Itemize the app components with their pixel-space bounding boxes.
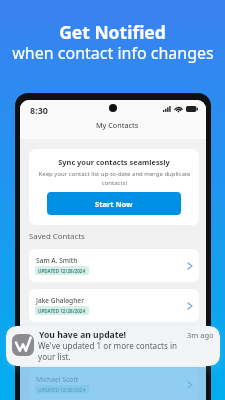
button[interactable]: You have an update! [6, 326, 220, 366]
staticText: Sync your contacts seamlessly [58, 157, 170, 167]
staticText: We've updated 1 or more contacts in your… [38, 340, 178, 362]
staticText: My Contacts [96, 120, 139, 130]
staticText: Jake Ghalagher [36, 296, 84, 305]
staticText: Saved Contacts [29, 231, 85, 242]
staticText: You have an update! [39, 329, 126, 341]
button[interactable]: Michael Scott [29, 368, 199, 400]
other: Open contact [188, 303, 192, 309]
button[interactable]: Anna Pearce [29, 328, 199, 361]
staticText: Start Now [95, 199, 133, 209]
staticText: Michael Scott [36, 375, 79, 384]
staticText: Get Notified [59, 20, 166, 44]
button[interactable]: Sam A. Smith [29, 249, 199, 282]
staticText: Anna Pearce [36, 335, 76, 344]
other: Open contact [188, 263, 192, 269]
staticText: Sam A. Smith [36, 256, 78, 265]
staticText: when contact info changes [12, 42, 214, 64]
staticText: UPDATED 12/28/2024 [38, 347, 86, 353]
other: Open contact [188, 382, 192, 388]
staticText: UPDATED 12/28/2024 [38, 387, 86, 393]
staticText: 3m ago [187, 330, 214, 340]
staticText: UPDATED 12/28/2024 [38, 268, 86, 274]
button[interactable]: Start Now [47, 192, 181, 215]
staticText: UPDATED 12/28/2024 [38, 308, 86, 314]
staticText: Keep your contact list up-to-date and me… [38, 170, 191, 186]
staticText: 8:30 [30, 104, 48, 116]
button[interactable]: Jake Ghalagher [29, 289, 199, 322]
